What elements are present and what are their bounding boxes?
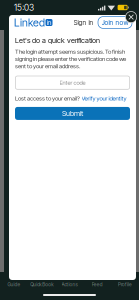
staticText: Enter code xyxy=(59,79,85,86)
button[interactable]: Profile xyxy=(111,280,139,289)
button[interactable]: Linked xyxy=(14,16,52,29)
staticText: Join now xyxy=(101,18,128,27)
staticText: in xyxy=(46,18,51,27)
staticText: Let's do a quick verification xyxy=(15,36,100,45)
button[interactable]: Join now xyxy=(98,17,132,28)
button[interactable]: Submit xyxy=(15,107,130,120)
button[interactable]: Quick Book xyxy=(28,280,56,289)
button[interactable]: Guide xyxy=(0,280,28,289)
staticText: Quick Book xyxy=(30,282,53,287)
staticText: The login attempt seems suspicious. To f… xyxy=(15,48,126,70)
staticText: Feed xyxy=(92,282,103,287)
staticText: Actions xyxy=(61,282,77,287)
button[interactable]: Feed xyxy=(83,280,111,289)
staticText: Submit xyxy=(62,109,83,118)
button[interactable]: Sign in xyxy=(71,16,96,29)
staticText: 15:03 xyxy=(14,2,34,13)
staticText: Guide xyxy=(7,282,20,287)
staticText: Lost access to your email? xyxy=(15,95,80,102)
button[interactable]: Actions xyxy=(56,280,83,289)
staticText: Sign in xyxy=(73,18,93,27)
button[interactable]: Enter code xyxy=(15,76,130,90)
button[interactable]: Verify your identity xyxy=(82,95,127,102)
button[interactable]: Close xyxy=(125,11,137,23)
staticText: Profile xyxy=(118,282,132,287)
staticText: Verify your identity xyxy=(82,95,127,102)
staticText: Linked xyxy=(14,16,45,29)
